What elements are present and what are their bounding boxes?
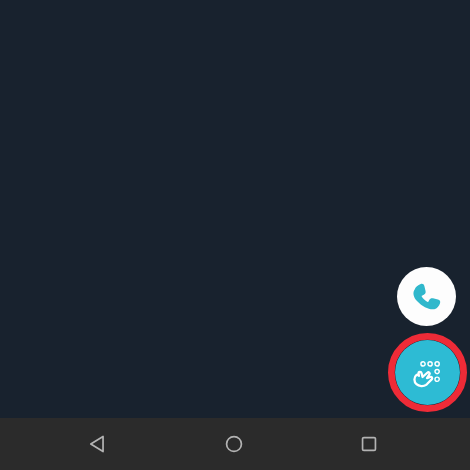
button[interactable]: Call: [397, 267, 456, 326]
button[interactable]: Home: [210, 418, 258, 470]
button[interactable]: Recent apps: [345, 418, 393, 470]
button[interactable]: Back: [74, 418, 122, 470]
button[interactable]: Dialpad: [388, 333, 467, 412]
